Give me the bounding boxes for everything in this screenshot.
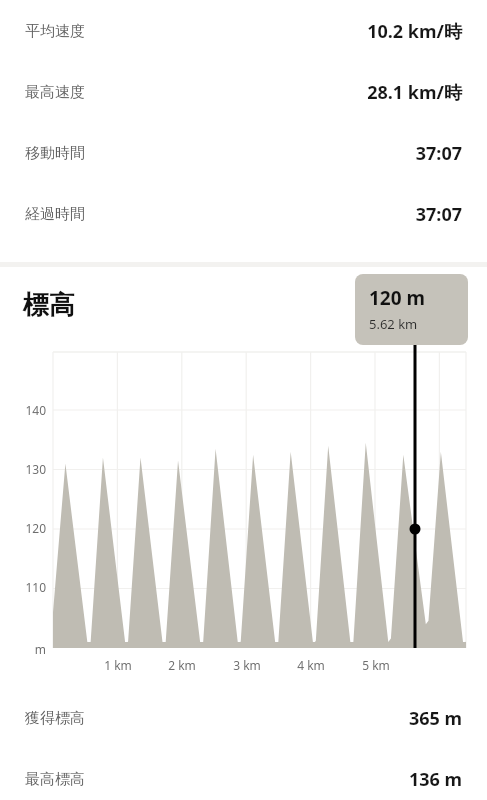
staticText: 5.62 km [369, 315, 418, 333]
staticText: 37:07 [415, 202, 462, 227]
staticText: m [28, 641, 46, 657]
staticText: 10.2 km/時 [367, 19, 462, 44]
staticText: 28.1 km/時 [367, 80, 462, 105]
staticText: 標高 [23, 289, 75, 322]
staticText: 移動時間 [25, 144, 85, 163]
button[interactable]: 獲得標高 [0, 688, 487, 749]
staticText: 1 km [93, 657, 143, 673]
staticText: 136 m [408, 767, 462, 792]
staticText: 120 m [369, 285, 426, 311]
button[interactable]: 最高速度 [0, 62, 487, 123]
staticText: 130 [8, 461, 46, 477]
staticText: 獲得標高 [25, 709, 85, 728]
button[interactable]: 移動時間 [0, 123, 487, 184]
staticText: 4 km [286, 657, 336, 673]
button[interactable]: 平均速度 [0, 1, 487, 62]
staticText: 140 [8, 402, 46, 418]
staticText: 120 [8, 520, 46, 536]
staticText: 110 [8, 579, 46, 595]
button[interactable]: 120 m [355, 274, 468, 345]
staticText: 2 km [157, 657, 207, 673]
staticText: 37:07 [415, 141, 462, 166]
staticText: 5 km [351, 657, 401, 673]
button[interactable]: 最高標高 [0, 749, 487, 800]
staticText: 3 km [222, 657, 272, 673]
staticText: 経過時間 [25, 205, 85, 224]
staticText: 最高標高 [25, 770, 85, 789]
staticText: 最高速度 [25, 83, 85, 102]
staticText: 平均速度 [25, 22, 85, 41]
staticText: 365 m [408, 706, 462, 731]
button[interactable]: 経過時間 [0, 184, 487, 245]
